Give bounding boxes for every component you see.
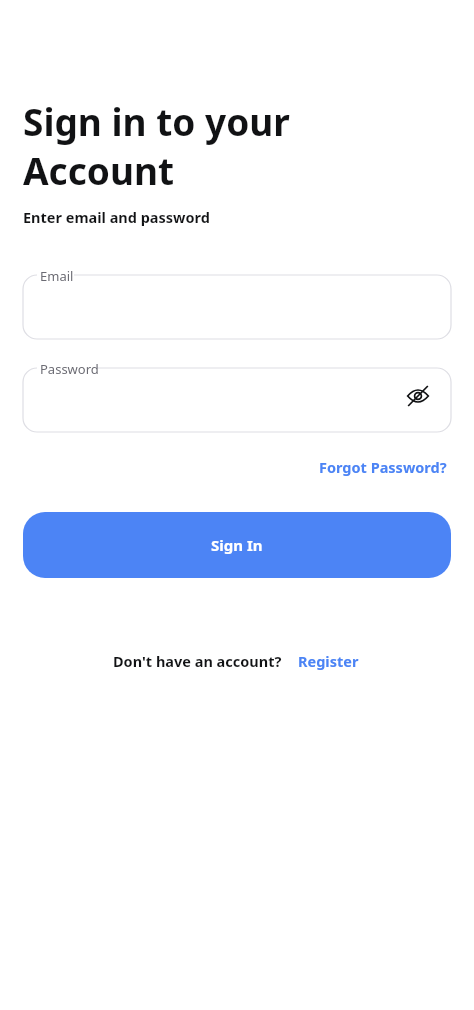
staticText: Sign in to your Account — [23, 96, 290, 196]
button[interactable]: Sign In — [23, 512, 451, 578]
staticText: Email — [40, 267, 74, 285]
staticText: Register — [298, 651, 359, 671]
staticText: Don't have an account? — [113, 651, 282, 671]
staticText: Enter email and password — [23, 207, 210, 227]
button[interactable]: Register — [296, 648, 361, 674]
staticText: Sign In — [211, 535, 263, 555]
staticText: Password — [40, 360, 99, 378]
staticText: Forgot Password? — [319, 457, 447, 477]
button[interactable]: Forgot Password? — [315, 454, 451, 480]
button[interactable]: Show password — [401, 379, 435, 413]
